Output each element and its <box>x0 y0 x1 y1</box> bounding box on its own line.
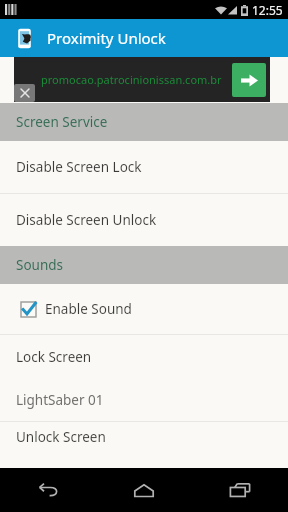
button[interactable]: Home <box>96 468 192 512</box>
button[interactable]: Back <box>0 468 96 512</box>
button[interactable]: Unlock Screen <box>0 422 288 452</box>
staticText: Unlock Screen <box>16 428 106 446</box>
staticText: Proximity Unlock <box>47 28 166 48</box>
button[interactable]: Proximity Unlock icon <box>0 19 288 57</box>
staticText: Lock Screen <box>16 348 92 366</box>
button[interactable]: Close advertisement <box>14 84 35 102</box>
staticText: Disable Screen Lock <box>16 158 142 176</box>
button[interactable]: promocao.patrocinionissan.com.br <box>14 57 270 102</box>
button[interactable]: LightSaber 01 <box>0 379 288 421</box>
button[interactable]: Open advertisement <box>232 63 266 97</box>
other: Proximity Unlock icon <box>14 28 35 49</box>
staticText: 12:55 <box>252 2 283 18</box>
button[interactable]: Disable Screen Unlock <box>0 194 288 246</box>
button[interactable]: Lock Screen <box>0 335 288 379</box>
button[interactable]: Enable Sound <box>0 284 288 334</box>
staticText: promocao.patrocinionissan.com.br <box>41 72 222 87</box>
button[interactable]: Recent apps <box>192 468 288 512</box>
staticText: Sounds <box>16 256 64 274</box>
staticText: Disable Screen Unlock <box>16 211 157 229</box>
staticText: Screen Service <box>16 113 108 131</box>
staticText: LightSaber 01 <box>16 391 104 409</box>
button[interactable]: Disable Screen Lock <box>0 141 288 193</box>
staticText: Enable Sound <box>45 300 132 318</box>
